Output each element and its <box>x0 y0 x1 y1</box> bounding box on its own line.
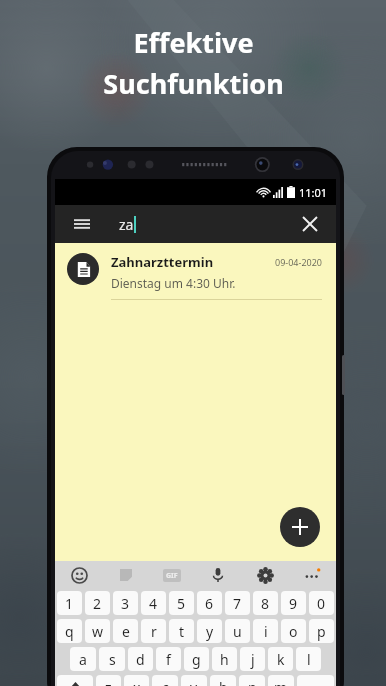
button[interactable]: j <box>240 647 265 671</box>
staticText: e <box>122 622 130 641</box>
staticText: 8 <box>261 594 270 613</box>
staticText: GIF <box>166 571 178 581</box>
staticText: j <box>251 650 255 669</box>
staticText: i <box>264 622 268 641</box>
staticText: 9 <box>289 594 298 613</box>
button[interactable]: 0 <box>309 591 334 615</box>
button[interactable]: 3 <box>113 591 138 615</box>
button[interactable] <box>297 675 334 686</box>
button[interactable]: k <box>268 647 293 671</box>
staticText: f <box>166 650 171 669</box>
staticText: 6 <box>205 594 214 613</box>
staticText: q <box>65 622 74 641</box>
staticText: b <box>219 678 228 686</box>
staticText: g <box>192 650 201 669</box>
staticText: Effektive <box>133 24 254 61</box>
staticText: w <box>92 622 104 641</box>
button[interactable]: p <box>309 619 334 643</box>
staticText: p <box>317 622 326 641</box>
button[interactable]: 6 <box>197 591 222 615</box>
button[interactable]: Stickers <box>116 565 136 585</box>
button[interactable]: m <box>268 675 294 686</box>
button[interactable]: Clear search <box>296 210 324 238</box>
staticText: s <box>109 650 116 669</box>
staticText: Dienstag um 4:30 Uhr. <box>111 275 236 291</box>
button[interactable]: More options <box>302 565 322 585</box>
staticText: 11:01 <box>299 185 328 200</box>
button[interactable]: n <box>239 675 265 686</box>
button[interactable]: GIF <box>163 569 181 582</box>
staticText: 4 <box>149 594 158 613</box>
staticText: t <box>179 622 185 641</box>
staticText: v <box>190 678 198 686</box>
button[interactable]: y <box>197 619 222 643</box>
button[interactable]: Emoji <box>69 565 89 585</box>
button[interactable]: 5 <box>169 591 194 615</box>
button[interactable]: Add note <box>280 507 320 547</box>
button[interactable]: Settings <box>255 565 275 585</box>
button[interactable]: e <box>113 619 138 643</box>
button[interactable]: a <box>70 647 96 671</box>
staticText: 3 <box>121 594 130 613</box>
staticText: 1 <box>65 594 74 613</box>
staticText: x <box>133 678 141 686</box>
staticText: 5 <box>177 594 186 613</box>
button[interactable]: b <box>210 675 236 686</box>
button[interactable]: l <box>296 647 321 671</box>
button[interactable]: u <box>225 619 250 643</box>
button[interactable]: v <box>181 675 207 686</box>
staticText: 2 <box>93 594 102 613</box>
staticText: za <box>119 215 134 234</box>
button[interactable]: Zahnarzttermin <box>55 243 336 304</box>
button[interactable]: g <box>184 647 209 671</box>
staticText: k <box>277 650 285 669</box>
staticText: u <box>233 622 242 641</box>
button[interactable]: Voice input <box>208 565 228 585</box>
staticText: 0 <box>317 594 326 613</box>
button[interactable]: 9 <box>281 591 306 615</box>
staticText: Suchfunktion <box>103 65 284 102</box>
button[interactable]: o <box>281 619 306 643</box>
button[interactable]: r <box>141 619 166 643</box>
button[interactable]: 7 <box>225 591 250 615</box>
staticText: h <box>220 650 229 669</box>
button[interactable]: x <box>124 675 149 686</box>
button[interactable]: 8 <box>253 591 278 615</box>
staticText: l <box>307 650 311 669</box>
staticText: c <box>162 678 169 686</box>
staticText: y <box>206 622 214 641</box>
button[interactable]: 1 <box>57 591 82 615</box>
button[interactable]: f <box>156 647 181 671</box>
button[interactable]: s <box>99 647 125 671</box>
button[interactable]: i <box>253 619 278 643</box>
button[interactable]: 4 <box>141 591 166 615</box>
button[interactable]: 2 <box>85 591 110 615</box>
button[interactable]: z <box>96 675 121 686</box>
staticText: o <box>289 622 298 641</box>
staticText: z <box>105 678 112 686</box>
button[interactable]: c <box>152 675 178 686</box>
button[interactable]: q <box>57 619 82 643</box>
staticText: n <box>248 678 257 686</box>
staticText: 09-04-2020 <box>275 256 322 268</box>
button[interactable] <box>57 675 93 686</box>
staticText: d <box>136 650 145 669</box>
button[interactable]: h <box>212 647 237 671</box>
staticText: 7 <box>233 594 242 613</box>
button[interactable]: d <box>128 647 153 671</box>
button[interactable]: w <box>85 619 110 643</box>
staticText: a <box>79 650 87 669</box>
staticText: Zahnarzttermin <box>111 253 214 271</box>
staticText: m <box>274 678 288 686</box>
button[interactable]: t <box>169 619 194 643</box>
staticText: r <box>151 622 157 641</box>
button[interactable]: Menu <box>67 209 97 239</box>
